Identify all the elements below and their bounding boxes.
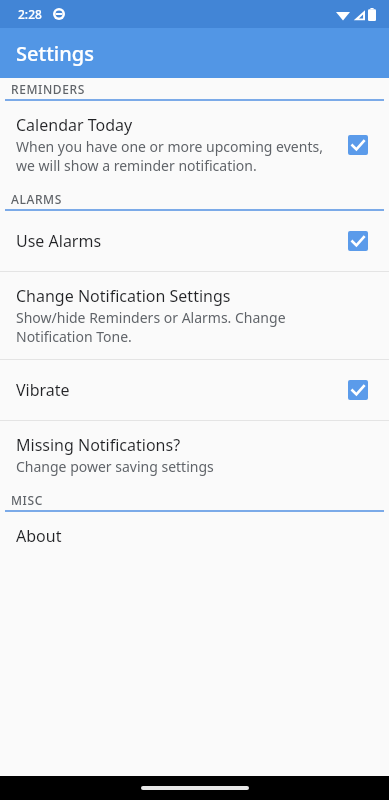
staticText: Calendar Today	[16, 114, 133, 136]
staticText: About	[16, 525, 62, 547]
button[interactable]: About	[0, 512, 389, 560]
staticText: ALARMS	[11, 191, 62, 207]
staticText: 2:28	[18, 6, 42, 22]
staticText: Change Notification Settings	[16, 285, 231, 307]
staticText: Vibrate	[16, 379, 70, 401]
staticText: Missing Notifications?	[16, 434, 181, 456]
button[interactable]: Toggle Vibrate	[341, 373, 375, 407]
staticText: Show/hide Reminders or Alarms. Change No…	[16, 308, 357, 346]
staticText: MISC	[11, 492, 43, 508]
button[interactable]: Change Notification Settings	[0, 272, 389, 359]
button[interactable]: Toggle Use Alarms	[341, 224, 375, 258]
button[interactable]: Toggle Calendar Today	[341, 128, 375, 162]
staticText: When you have one or more upcoming event…	[16, 137, 323, 175]
staticText: Use Alarms	[16, 230, 102, 252]
staticText: Change power saving settings	[16, 457, 214, 476]
button[interactable]: Vibrate	[0, 360, 389, 420]
button[interactable]: Calendar Today	[0, 101, 389, 188]
staticText: REMINDERS	[11, 81, 85, 97]
button[interactable]: Use Alarms	[0, 211, 389, 271]
button[interactable]: Missing Notifications?	[0, 421, 389, 489]
staticText: Settings	[16, 40, 94, 67]
